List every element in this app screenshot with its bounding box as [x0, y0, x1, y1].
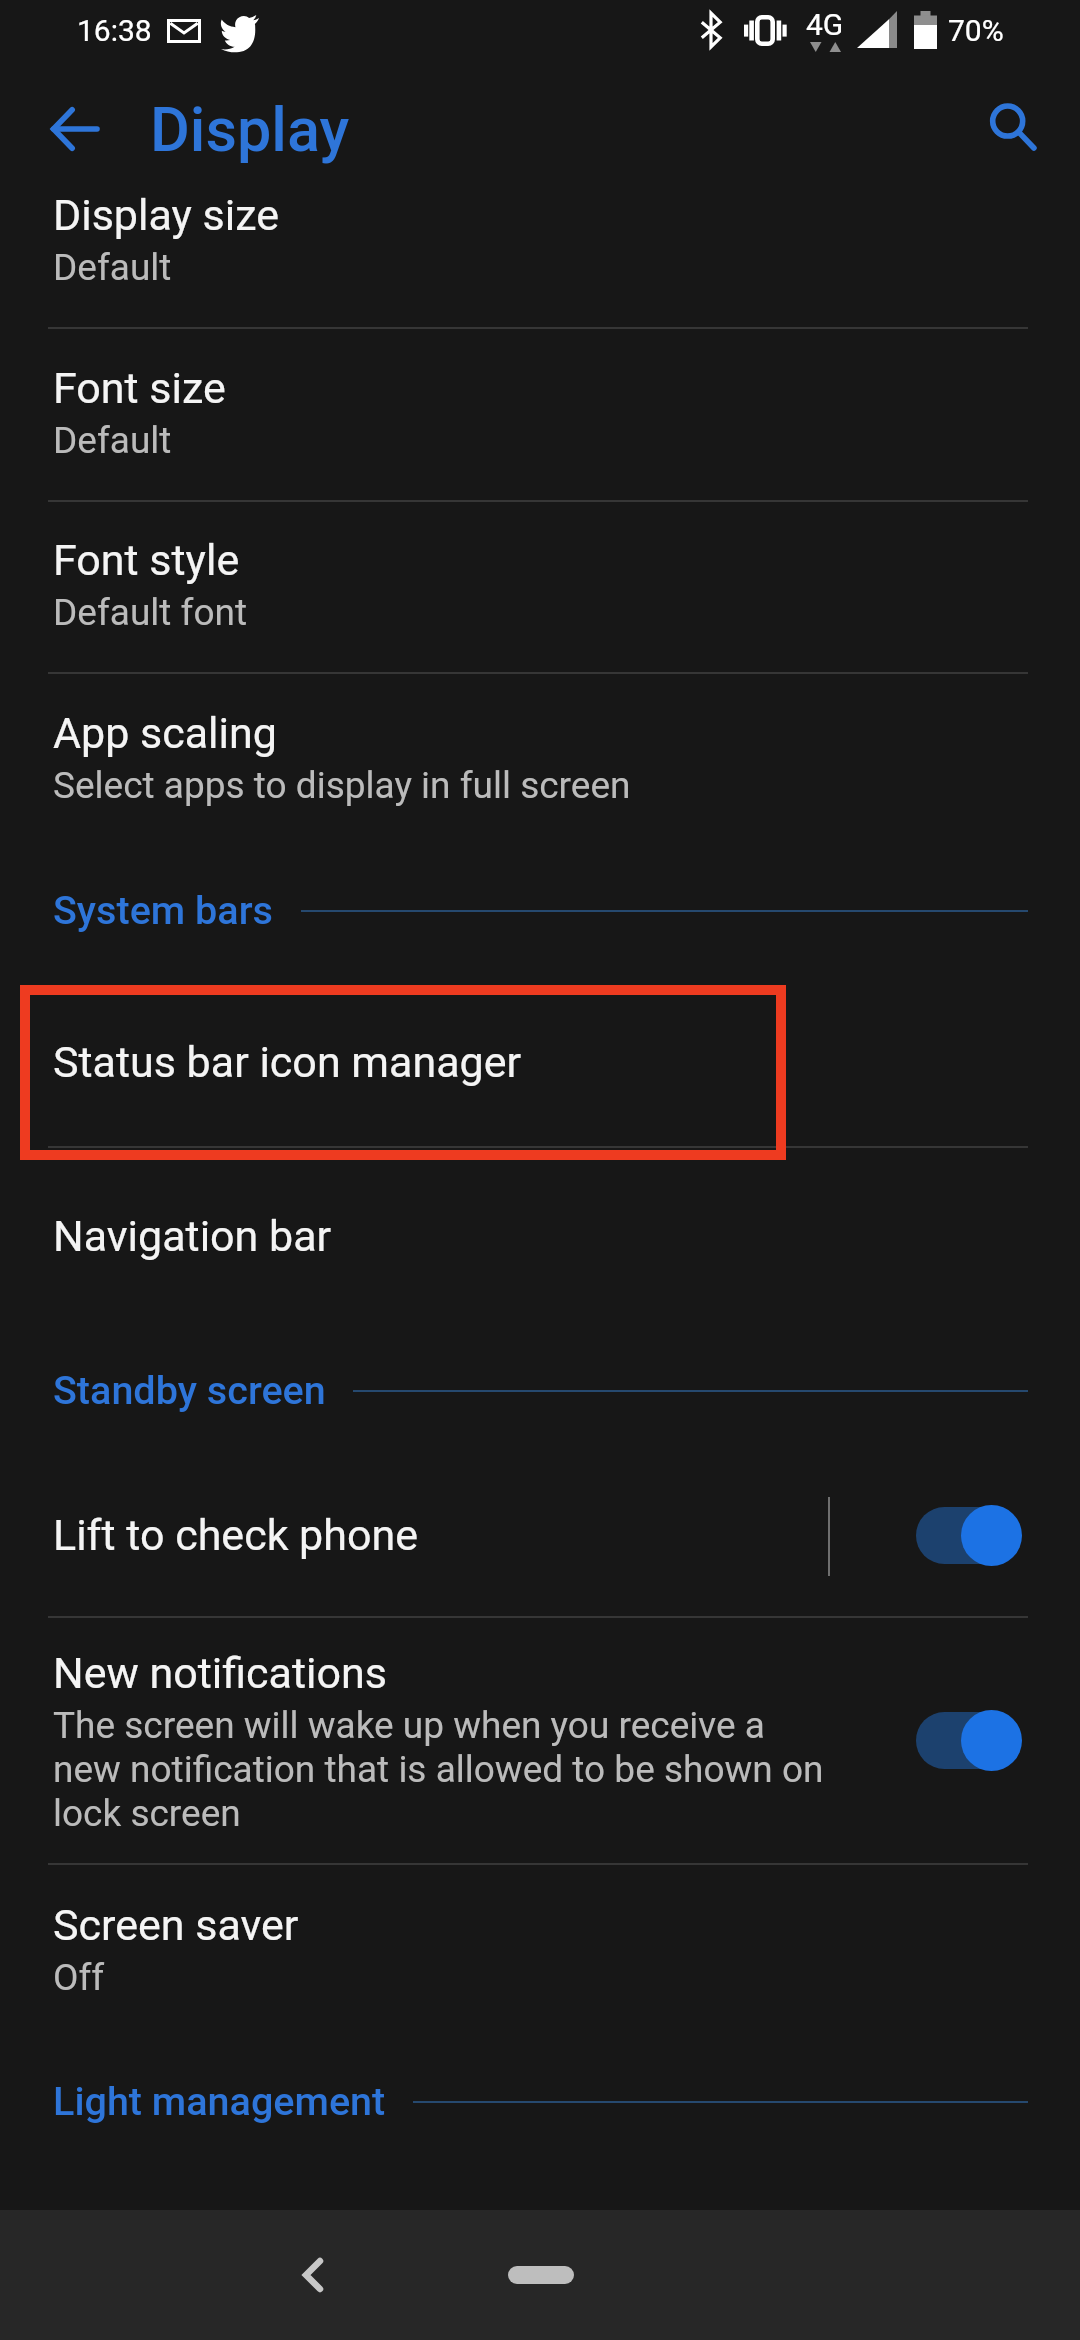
staticText: lock screen	[53, 1792, 241, 1835]
button[interactable]: Back	[28, 83, 120, 175]
button[interactable]	[0, 985, 1080, 1146]
staticText: Screen saver	[53, 1900, 299, 1950]
staticText: Light management	[53, 2078, 386, 2124]
button[interactable]	[0, 501, 1080, 672]
staticText: Display size	[53, 190, 280, 240]
staticText: Off	[53, 1956, 105, 1999]
staticText: Status bar icon manager	[53, 1037, 522, 1087]
staticText: Font size	[53, 363, 226, 413]
staticText: Display	[150, 94, 350, 165]
staticText: Default	[53, 246, 172, 289]
staticText: Font style	[53, 535, 240, 585]
staticText: 16:38	[77, 13, 152, 48]
staticText: new notification that is allowed to be s…	[53, 1748, 824, 1791]
staticText: Lift to check phone	[53, 1510, 418, 1560]
button[interactable]: Home	[508, 2266, 574, 2284]
button[interactable]: Toggle	[876, 1475, 1066, 1595]
staticText: New notifications	[53, 1648, 387, 1698]
staticText: Standby screen	[53, 1367, 326, 1413]
staticText: 70%	[948, 13, 1004, 48]
staticText: Default font	[53, 591, 248, 634]
staticText: Default	[53, 419, 172, 462]
staticText: System bars	[53, 887, 273, 933]
staticText: 4G	[806, 7, 844, 42]
button[interactable]	[0, 328, 1080, 500]
button[interactable]	[0, 1147, 1080, 1320]
button[interactable]	[0, 160, 1080, 327]
button[interactable]	[0, 673, 1080, 845]
staticText: Navigation bar	[53, 1211, 332, 1261]
button[interactable]	[0, 1455, 1080, 1616]
button[interactable]	[0, 1617, 1080, 1863]
staticText: The screen will wake up when you receive…	[53, 1704, 765, 1747]
button[interactable]: Toggle	[876, 1680, 1066, 1800]
staticText: App scaling	[53, 708, 277, 758]
button[interactable]	[0, 1864, 1080, 2040]
staticText: Select apps to display in full screen	[53, 764, 631, 807]
button[interactable]: Search	[964, 82, 1056, 174]
button[interactable]: Back	[268, 2230, 358, 2320]
